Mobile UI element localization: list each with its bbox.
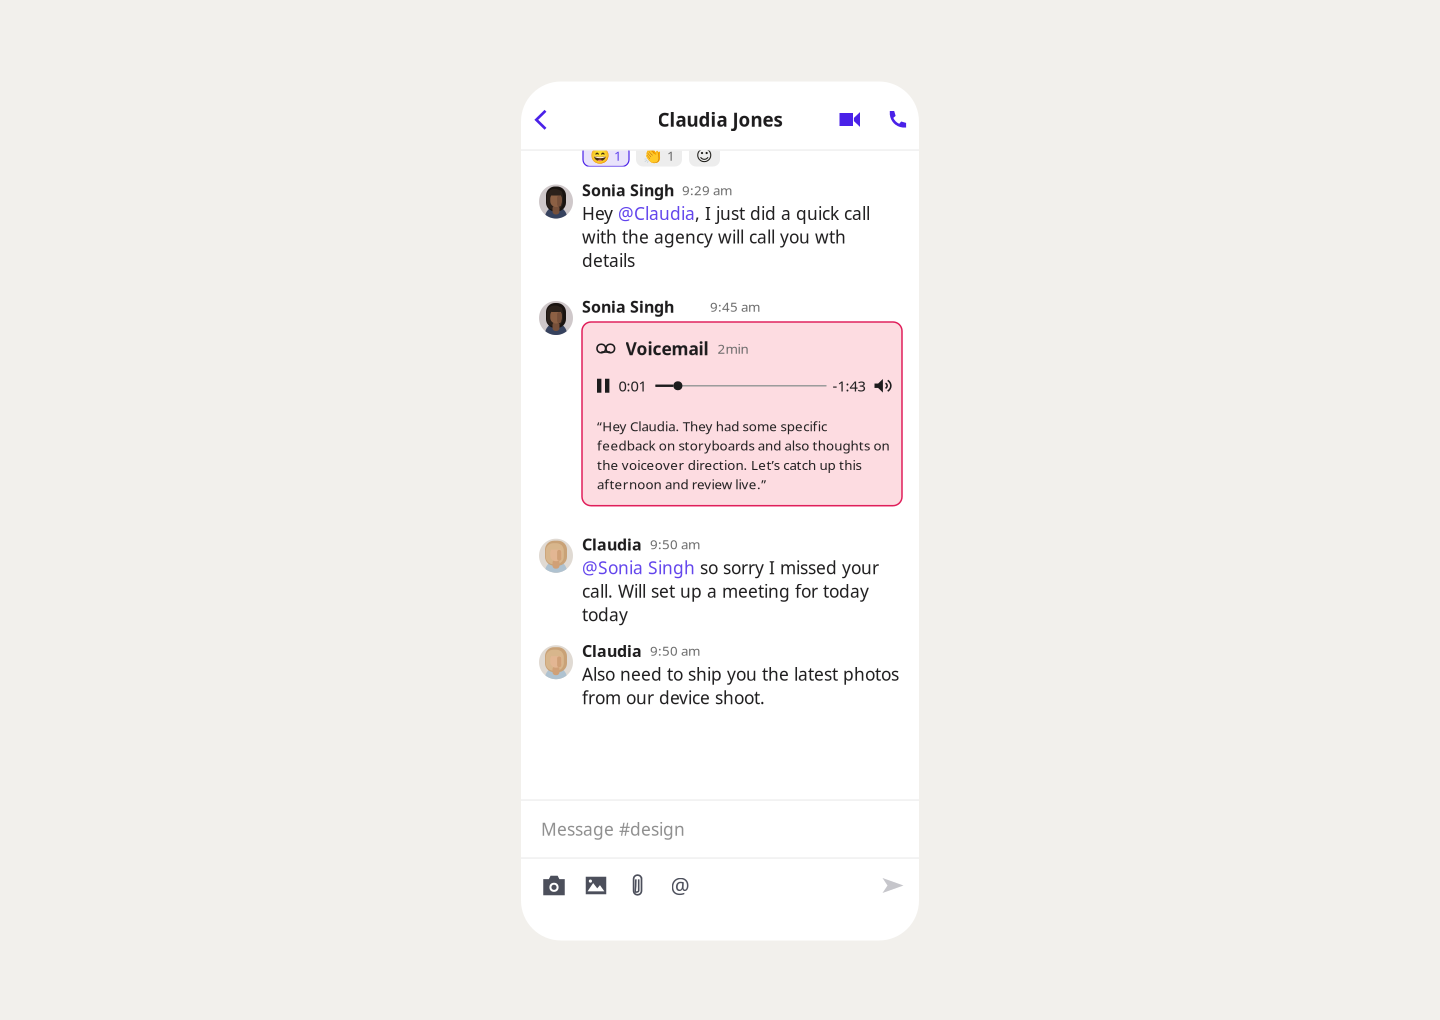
staticText: 2min — [718, 340, 749, 357]
staticText: Sonia Singh — [582, 296, 674, 317]
staticText: Claudia — [582, 640, 642, 661]
staticText: @ — [670, 871, 689, 900]
button[interactable]: Mention — [659, 865, 701, 905]
button[interactable]: Camera — [533, 865, 575, 905]
button[interactable]: ☺ — [689, 144, 720, 166]
staticText: from our device shoot. — [582, 686, 765, 709]
staticText: 😄 — [590, 146, 610, 165]
staticText: @Sonia Singh — [582, 556, 695, 579]
staticText: afternoon and review live.” — [597, 475, 766, 493]
staticText: “Hey Claudia. They had some specific — [597, 417, 827, 435]
staticText: the voiceover direction. Let’s catch up … — [597, 456, 862, 474]
staticText: 1 — [614, 147, 622, 164]
staticText: so sorry I missed your — [695, 556, 879, 579]
staticText: @Claudia — [618, 202, 695, 225]
staticText: feedback on storyboards and also thought… — [597, 437, 890, 454]
staticText: 9:29 am — [682, 181, 732, 199]
button[interactable]: 😄 — [583, 144, 629, 166]
staticText: call. Will set up a meeting for today — [582, 579, 869, 602]
staticText: 1 — [667, 147, 675, 164]
staticText: details — [582, 249, 635, 272]
staticText: today — [582, 603, 628, 626]
staticText: -1:43 — [832, 376, 865, 395]
staticText: Voicemail — [626, 337, 709, 360]
button[interactable]: Call — [883, 104, 913, 134]
staticText: 9:50 am — [650, 642, 700, 659]
staticText: Hey — [582, 202, 618, 225]
staticText: Message #design — [541, 817, 685, 840]
staticText: 9:50 am — [650, 535, 700, 553]
button[interactable]: 👏 — [636, 144, 682, 166]
button[interactable]: Video call — [835, 104, 865, 134]
staticText: 9:45 am — [710, 298, 760, 315]
staticText: Claudia Jones — [657, 107, 782, 132]
staticText: 👏 — [643, 146, 663, 165]
button[interactable]: Back — [526, 104, 556, 134]
staticText: Sonia Singh — [582, 179, 674, 201]
staticText: with the agency will call you wth — [582, 225, 846, 248]
staticText: , I just did a quick call — [695, 202, 870, 225]
staticText: 0:01 — [618, 376, 646, 395]
button[interactable]: Send — [875, 865, 911, 905]
staticText: ☺ — [696, 146, 713, 165]
staticText: Claudia — [582, 534, 642, 555]
staticText: Also need to ship you the latest photos — [582, 662, 899, 685]
button[interactable]: Photos — [575, 865, 617, 905]
button[interactable]: Attach file — [617, 865, 659, 905]
